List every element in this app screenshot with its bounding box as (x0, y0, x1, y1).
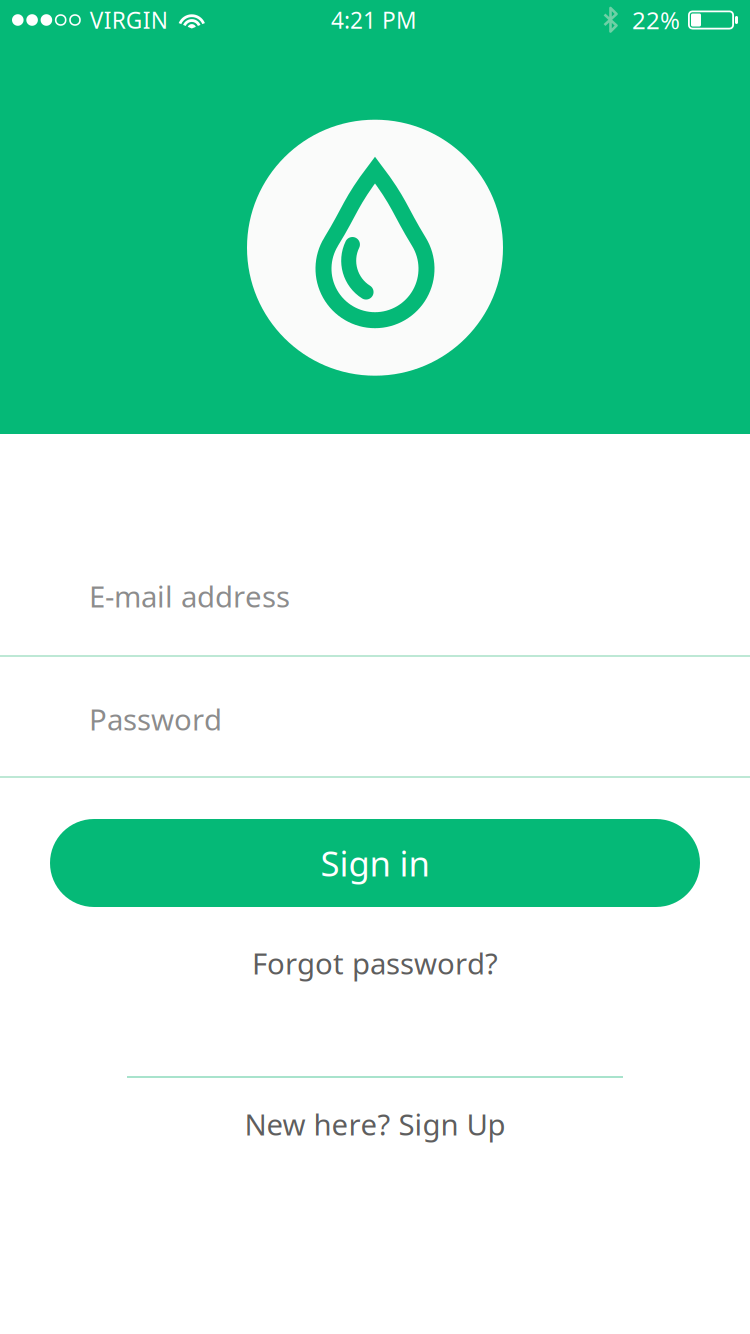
staticText: New here? Sign Up (244, 1104, 505, 1143)
staticText: Sign in (320, 840, 429, 886)
button[interactable]: Password (0, 657, 750, 776)
staticText: Forgot password? (252, 943, 498, 982)
button[interactable]: Sign in (50, 819, 700, 907)
button[interactable]: E-mail address (0, 434, 750, 655)
staticText: Password (89, 699, 222, 738)
staticText: 4:21 PM (331, 5, 417, 35)
staticText: 22% (632, 4, 680, 36)
button[interactable]: New here? Sign Up (160, 1094, 590, 1154)
staticText: VIRGIN (90, 5, 168, 35)
staticText: E-mail address (89, 576, 290, 615)
button[interactable]: Forgot password? (160, 933, 590, 993)
